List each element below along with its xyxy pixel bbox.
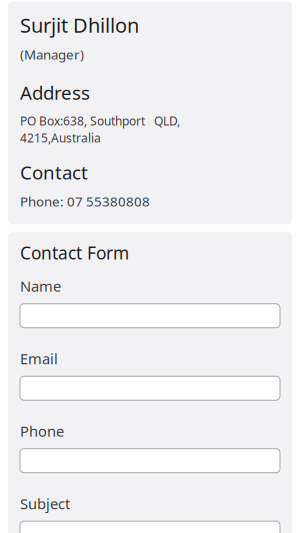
staticText: Surjit Dhillon (20, 12, 139, 38)
staticText: Subject (20, 494, 70, 513)
staticText: (Manager) (20, 45, 84, 63)
button[interactable]: Phone field (20, 449, 280, 473)
button[interactable]: Name field (20, 304, 280, 328)
button[interactable]: Email field (20, 376, 280, 400)
staticText: Address (20, 80, 90, 105)
staticText: Contact (20, 160, 88, 185)
staticText: Email (20, 349, 58, 368)
staticText: 4215,Australia (20, 130, 101, 146)
staticText: Name (20, 276, 61, 296)
staticText: Phone: 07 55380808 (20, 192, 150, 210)
staticText: Contact Form (20, 241, 129, 264)
staticText: PO Box:638, Southport QLD, (20, 113, 180, 129)
staticText: Phone (20, 421, 64, 441)
button[interactable]: Subject field (20, 521, 280, 533)
